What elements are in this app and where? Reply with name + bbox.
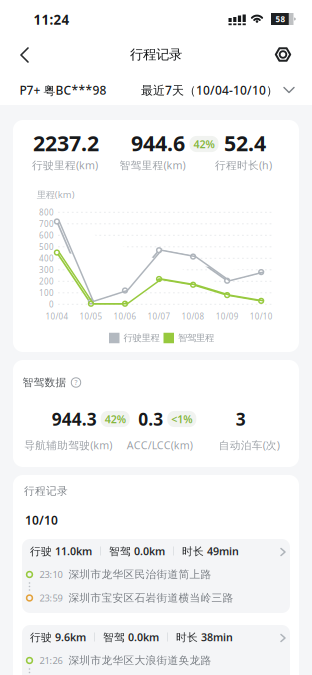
staticText: 行驶 9.6km [30,630,86,644]
staticText: 200 [39,276,54,287]
staticText: 10/04 [45,311,68,322]
staticText: 行程记录 [24,484,68,497]
staticText: 行程记录 [130,46,182,63]
staticText: 52.4 [224,129,266,157]
staticText: <1% [171,412,192,426]
staticText: 23:59 [40,592,63,604]
staticText: 智驾里程(km) [119,158,185,172]
staticText: 行驶 11.0km [30,544,92,558]
staticText: 944.6 [131,129,185,157]
staticText: 10/05 [79,311,102,322]
staticText: 里程(km) [37,188,75,201]
staticText: ACC/LCC(km) [127,438,193,452]
staticText: 智驾数据 [22,376,66,389]
staticText: 600 [39,230,54,241]
button[interactable]: 行驶 9.6km [22,625,290,675]
button[interactable]: P7+ 粤BC***98 [20,82,140,98]
staticText: ? [74,378,77,387]
button[interactable]: Help [70,377,81,388]
staticText: 944.3 [52,407,97,430]
staticText: 智驾 0.0km [103,630,159,644]
staticText: 深圳市宝安区石岩街道横当岭三路 [69,591,234,604]
staticText: 时长 49min [182,544,239,558]
staticText: 0 [49,299,54,310]
staticText: 500 [39,241,54,252]
staticText: 时长 38min [176,630,233,644]
staticText: 10/10 [25,512,58,528]
staticText: 42% [193,137,214,151]
staticText: 10/09 [216,311,239,322]
staticText: 100 [39,287,54,298]
staticText: 智驾里程 [178,332,214,344]
staticText: P7+ 粤BC***98 [20,82,107,98]
staticText: 自动泊车(次) [219,438,280,452]
staticText: 行驶里程(km) [32,158,98,172]
staticText: 行驶里程 [123,332,159,344]
button[interactable]: Settings [270,41,296,67]
button[interactable]: 行驶 11.0km [22,539,290,613]
staticText: 最近7天（10/04-10/10） [141,82,278,98]
staticText: 2237.2 [33,129,99,157]
staticText: 400 [39,253,54,264]
staticText: 10/08 [182,311,205,322]
button[interactable]: Back [12,44,38,66]
staticText: 58 [275,14,285,24]
staticText: 深圳市龙华区民治街道简上路 [69,568,212,581]
staticText: 3 [236,407,246,430]
staticText: 导航辅助驾驶(km) [24,438,112,452]
staticText: 11:24 [33,11,69,28]
staticText: 智驾 0.0km [109,544,165,558]
staticText: 10/06 [113,311,136,322]
staticText: 700 [39,218,54,229]
staticText: 300 [39,264,54,275]
staticText: 21:26 [40,654,63,667]
staticText: 10/07 [148,311,171,322]
button[interactable]: 最近7天（10/04-10/10） [115,82,295,98]
staticText: 行程时长(h) [215,158,272,172]
staticText: 深圳市龙华区大浪街道奂龙路 [69,654,212,667]
staticText: 0.3 [138,407,163,430]
staticText: 42% [105,412,126,426]
staticText: 10/10 [250,311,273,322]
staticText: 800 [39,207,54,218]
staticText: 23:10 [40,568,63,581]
